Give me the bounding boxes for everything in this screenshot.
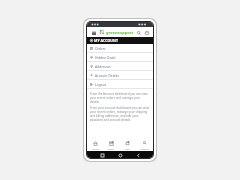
button[interactable]: Back: [135, 152, 141, 158]
staticText: Account: [140, 147, 150, 150]
button[interactable]: Shop: [103, 140, 119, 151]
staticText: Logout: [95, 82, 106, 86]
button[interactable]: MY ACCOUNT: [87, 37, 153, 44]
staticText: MY ACCOUNT: [94, 38, 119, 43]
button[interactable]: Orders: [87, 44, 153, 52]
staticText: From the Account dashboard you can view …: [90, 92, 150, 104]
button[interactable]: Home: [87, 140, 103, 151]
button[interactable]: Addresses: [87, 62, 153, 70]
staticText: greensupport: [106, 30, 134, 35]
button[interactable]: Account: [136, 140, 153, 151]
button[interactable]: Account Details: [87, 71, 153, 79]
button[interactable]: Home: [117, 152, 123, 158]
staticText: From your account dashboard you can view…: [90, 106, 150, 122]
staticText: Addresses: [95, 64, 111, 68]
button[interactable]: Recents: [99, 152, 105, 158]
button[interactable]: Hidden Deals: [87, 53, 153, 61]
staticText: Orders: [95, 46, 106, 50]
staticText: Shop: [108, 147, 114, 150]
staticText: Hidden Deals: [95, 55, 116, 59]
button[interactable]: Menu: [90, 29, 97, 36]
button[interactable]: Cart: [119, 140, 136, 151]
staticText: Home: [92, 147, 99, 150]
button[interactable]: Search: [135, 29, 142, 36]
staticText: Account Details: [95, 73, 119, 77]
button[interactable]: Account: [143, 29, 150, 36]
button[interactable]: Logout: [87, 80, 153, 88]
staticText: Cart: [125, 147, 130, 150]
